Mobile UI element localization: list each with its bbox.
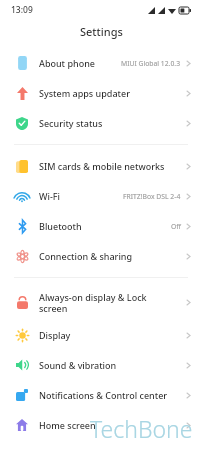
button[interactable]: Wi-Fi (0, 181, 202, 211)
staticText: Settings (80, 24, 123, 39)
staticText: System apps updater (39, 87, 130, 99)
staticText: Display (39, 329, 71, 341)
button[interactable]: Connection & sharing (0, 241, 202, 271)
other: About phone (17, 56, 28, 70)
staticText: Off (171, 222, 181, 231)
staticText: Notifications & Control center (39, 389, 168, 401)
button[interactable]: Sound & vibration (0, 350, 202, 380)
staticText: Sound & vibration (39, 359, 117, 371)
staticText: Security status (39, 117, 103, 129)
button[interactable]: Display (0, 320, 202, 350)
button[interactable]: SIM cards & mobile networks (0, 151, 202, 181)
staticText: 13:09 (11, 4, 33, 16)
button[interactable]: Home screen (0, 410, 202, 440)
staticText: TechBone (90, 413, 193, 444)
staticText: SIM cards & mobile networks (39, 160, 165, 172)
button[interactable]: About phone (0, 48, 202, 78)
staticText: Wi-Fi (39, 190, 60, 202)
staticText: Always-on display & Lock screen (39, 291, 147, 314)
button[interactable]: Notifications & Control center (0, 380, 202, 410)
staticText: Home screen (39, 419, 96, 431)
button[interactable]: System apps updater (0, 78, 202, 108)
staticText: FRITZ!Box DSL 2-4 (123, 192, 181, 201)
button[interactable]: Always-on display & Lock screen (0, 284, 202, 320)
staticText: Connection & sharing (39, 250, 133, 262)
button[interactable]: Security status (0, 108, 202, 138)
button[interactable]: Bluetooth (0, 211, 202, 241)
staticText: About phone (39, 57, 95, 69)
staticText: MIUI Global 12.0.3 (121, 59, 181, 68)
staticText: Bluetooth (39, 220, 82, 232)
